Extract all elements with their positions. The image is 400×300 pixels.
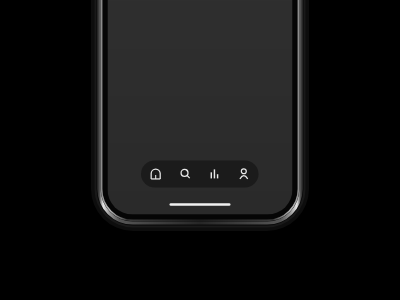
button[interactable]: Search (170, 160, 199, 187)
button[interactable]: Profile (228, 160, 257, 187)
button[interactable]: Home (141, 160, 170, 187)
button[interactable]: Statistics (199, 160, 228, 187)
